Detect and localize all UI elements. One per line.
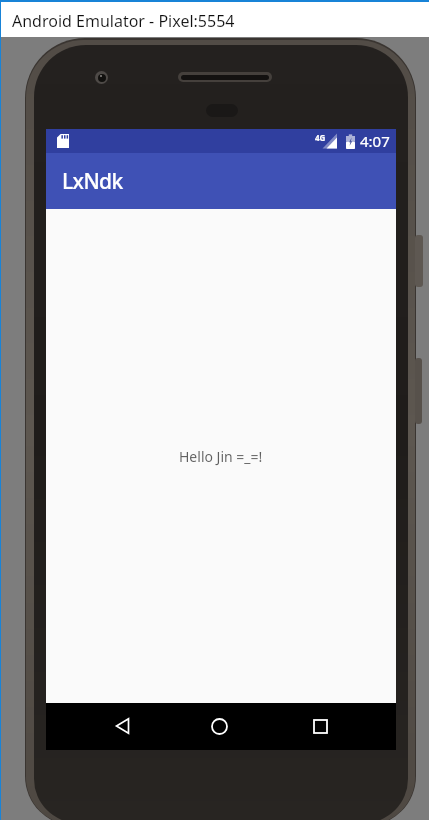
staticText: Hello Jin =_=! (179, 447, 263, 466)
staticText: 4:07 (360, 131, 390, 151)
button[interactable] (199, 706, 239, 746)
staticText: LxNdk (62, 167, 123, 196)
staticText: 4G (315, 132, 326, 143)
button[interactable] (103, 706, 143, 746)
button[interactable] (300, 706, 340, 746)
staticText: Android Emulator - Pixel:5554 (12, 10, 235, 32)
